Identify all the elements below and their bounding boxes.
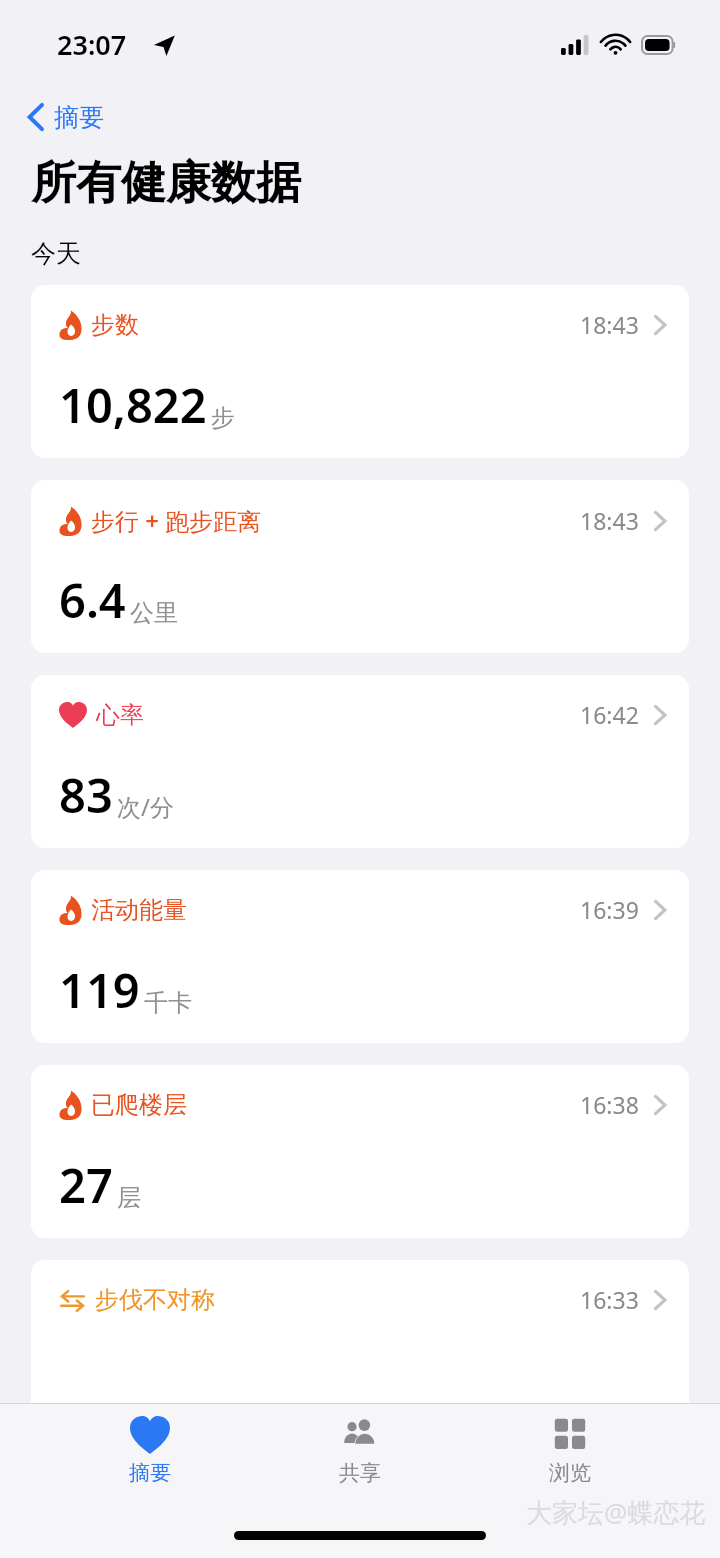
button[interactable]: 步行 + 跑步距离 [31,480,689,653]
button[interactable]: 心率 [31,675,689,848]
staticText: 步数 [91,310,139,340]
staticText: 步行 + 跑步距离 [91,504,262,537]
button[interactable]: 浏览 [510,1416,630,1486]
staticText: 10,822 [59,373,207,437]
staticText: 摘要 [129,1460,171,1486]
staticText: 共享 [339,1460,381,1486]
staticText: 18:43 [580,309,639,340]
button[interactable]: 活动能量 [31,870,689,1043]
staticText: 步伐不对称 [95,1285,215,1315]
staticText: 心率 [96,700,144,730]
staticText: 16:38 [580,1089,639,1120]
staticText: 16:39 [580,894,639,925]
staticText: 摘要 [54,102,104,133]
staticText: 步 [211,403,235,433]
button[interactable]: 摘要 [22,95,108,139]
button[interactable]: 已爬楼层 [31,1065,689,1238]
staticText: 已爬楼层 [91,1090,187,1120]
staticText: 23:07 [57,26,127,63]
staticText: 次/分 [117,790,174,823]
staticText: 16:33 [580,1284,639,1315]
staticText: 18:43 [580,505,639,536]
button[interactable]: 共享 [300,1416,420,1486]
staticText: 6.4 [59,568,126,632]
button[interactable]: 步数 [31,285,689,458]
staticText: 27 [59,1153,113,1217]
staticText: 所有健康数据 [31,155,301,212]
staticText: 16:42 [580,699,639,730]
staticText: 公里 [130,598,178,628]
staticText: 浏览 [549,1460,591,1486]
staticText: 大家坛@蝶恋花 [526,1494,706,1530]
staticText: 层 [117,1183,141,1213]
staticText: 今天 [31,238,81,269]
staticText: 119 [59,958,140,1022]
staticText: 活动能量 [91,895,187,925]
button[interactable]: 步伐不对称 [31,1260,689,1433]
staticText: 83 [59,763,113,827]
button[interactable]: 摘要 [90,1416,210,1486]
staticText: 千卡 [144,988,192,1018]
